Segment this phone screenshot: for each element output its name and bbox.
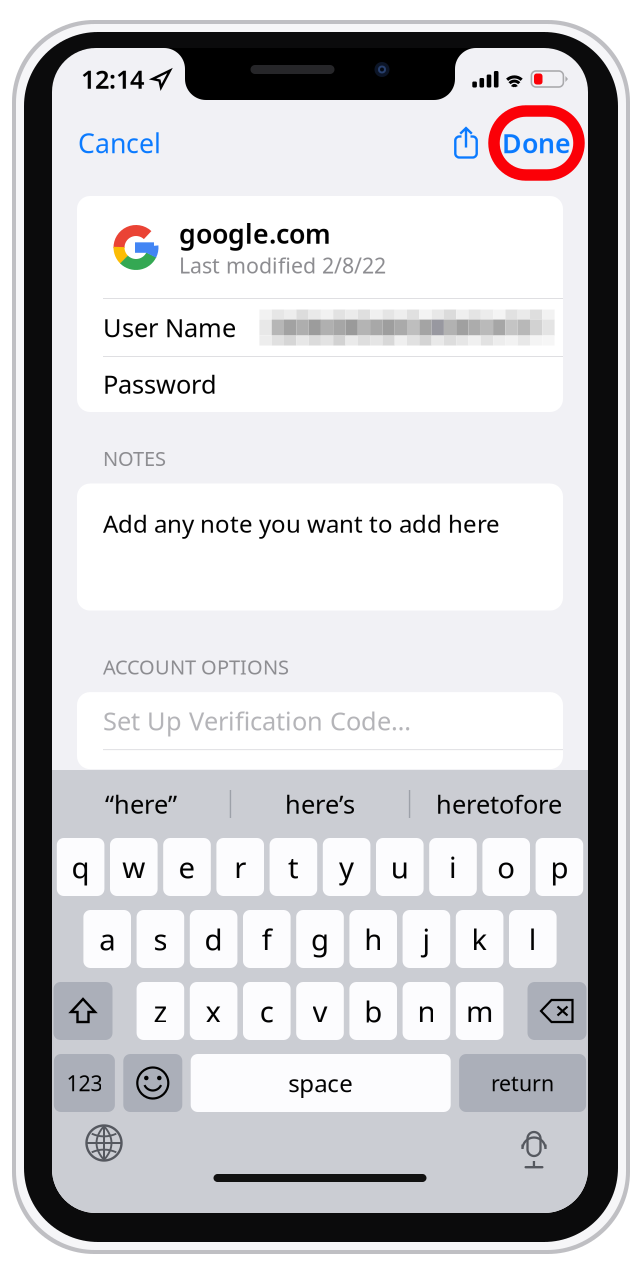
button[interactable]: b xyxy=(349,982,397,1040)
staticText: v xyxy=(312,991,327,1030)
staticText: Done xyxy=(502,125,571,161)
button[interactable]: o xyxy=(482,838,530,896)
button[interactable]: heretofore xyxy=(410,773,588,835)
staticText: j xyxy=(422,919,430,958)
button[interactable]: u xyxy=(376,838,424,896)
staticText: y xyxy=(339,847,354,886)
button[interactable]: Delete xyxy=(527,982,586,1040)
button[interactable]: r xyxy=(216,838,264,896)
button[interactable]: Password xyxy=(77,357,563,411)
button[interactable]: Done xyxy=(493,116,579,170)
staticText: n xyxy=(417,991,435,1030)
staticText: s xyxy=(153,919,167,958)
staticText: g xyxy=(311,919,329,958)
button[interactable]: Dictate xyxy=(508,1120,560,1166)
staticText: m xyxy=(466,991,493,1030)
button[interactable]: d xyxy=(190,910,237,968)
button[interactable]: a xyxy=(83,910,131,968)
staticText: d xyxy=(205,919,223,958)
staticText: h xyxy=(364,919,382,958)
button[interactable]: 123 xyxy=(54,1054,115,1112)
staticText: ACCOUNT OPTIONS xyxy=(103,654,289,680)
staticText: x xyxy=(206,991,222,1030)
staticText: google.com xyxy=(179,216,331,251)
button[interactable]: l xyxy=(509,910,557,968)
button[interactable]: q xyxy=(57,838,104,896)
button[interactable]: Shift xyxy=(53,982,112,1040)
staticText: t xyxy=(288,847,299,886)
staticText: a xyxy=(99,919,115,958)
button[interactable]: x xyxy=(190,982,237,1040)
button[interactable]: c xyxy=(243,982,291,1040)
staticText: Password xyxy=(103,367,217,401)
staticText: u xyxy=(391,847,409,886)
staticText: User Name xyxy=(103,311,236,344)
staticText: 12:14 xyxy=(81,62,144,96)
staticText: here’s xyxy=(285,787,355,821)
button[interactable]: Cancel xyxy=(52,116,179,170)
staticText: Set Up Verification Code… xyxy=(103,704,411,737)
button[interactable]: j xyxy=(403,910,450,968)
button[interactable]: Switch keyboard xyxy=(78,1120,130,1166)
staticText: r xyxy=(234,847,246,886)
button[interactable]: i xyxy=(429,838,477,896)
staticText: z xyxy=(153,991,167,1030)
staticText: NOTES xyxy=(103,445,166,472)
button[interactable]: n xyxy=(403,982,450,1040)
button[interactable]: “here” xyxy=(52,773,230,835)
button[interactable]: v xyxy=(296,982,344,1040)
button[interactable]: User Name xyxy=(77,299,563,356)
staticText: Add any note you want to add here xyxy=(103,508,500,539)
staticText: w xyxy=(122,847,145,886)
button[interactable]: g xyxy=(296,910,344,968)
staticText: Last modified 2/8/22 xyxy=(179,251,386,279)
button[interactable]: Set Up Verification Code… xyxy=(77,692,563,749)
staticText: return xyxy=(491,1069,554,1097)
button[interactable]: e xyxy=(163,838,211,896)
button[interactable]: w xyxy=(110,838,158,896)
button[interactable]: s xyxy=(137,910,184,968)
button[interactable]: here’s xyxy=(231,773,409,835)
button[interactable]: f xyxy=(243,910,291,968)
staticText: l xyxy=(529,919,537,958)
button[interactable]: space xyxy=(191,1054,451,1112)
staticText: Cancel xyxy=(78,125,161,161)
staticText: c xyxy=(260,991,274,1030)
button[interactable]: m xyxy=(456,982,503,1040)
button[interactable]: Share xyxy=(439,116,493,170)
staticText: i xyxy=(449,847,457,886)
staticText: q xyxy=(72,847,90,886)
button[interactable]: p xyxy=(536,838,583,896)
staticText: space xyxy=(288,1067,353,1099)
staticText: o xyxy=(497,847,515,886)
staticText: e xyxy=(178,847,195,886)
button[interactable]: t xyxy=(270,838,317,896)
staticText: “here” xyxy=(105,787,177,821)
button[interactable]: k xyxy=(456,910,503,968)
staticText: b xyxy=(364,991,382,1030)
button[interactable]: return xyxy=(459,1054,586,1112)
staticText: p xyxy=(550,847,568,886)
button[interactable]: y xyxy=(323,838,370,896)
staticText: heretofore xyxy=(436,787,562,821)
button[interactable]: h xyxy=(349,910,397,968)
button[interactable]: z xyxy=(137,982,184,1040)
staticText: f xyxy=(262,919,272,958)
button[interactable]: Emoji xyxy=(123,1054,182,1112)
staticText: 123 xyxy=(66,1069,102,1097)
staticText: k xyxy=(472,919,488,958)
